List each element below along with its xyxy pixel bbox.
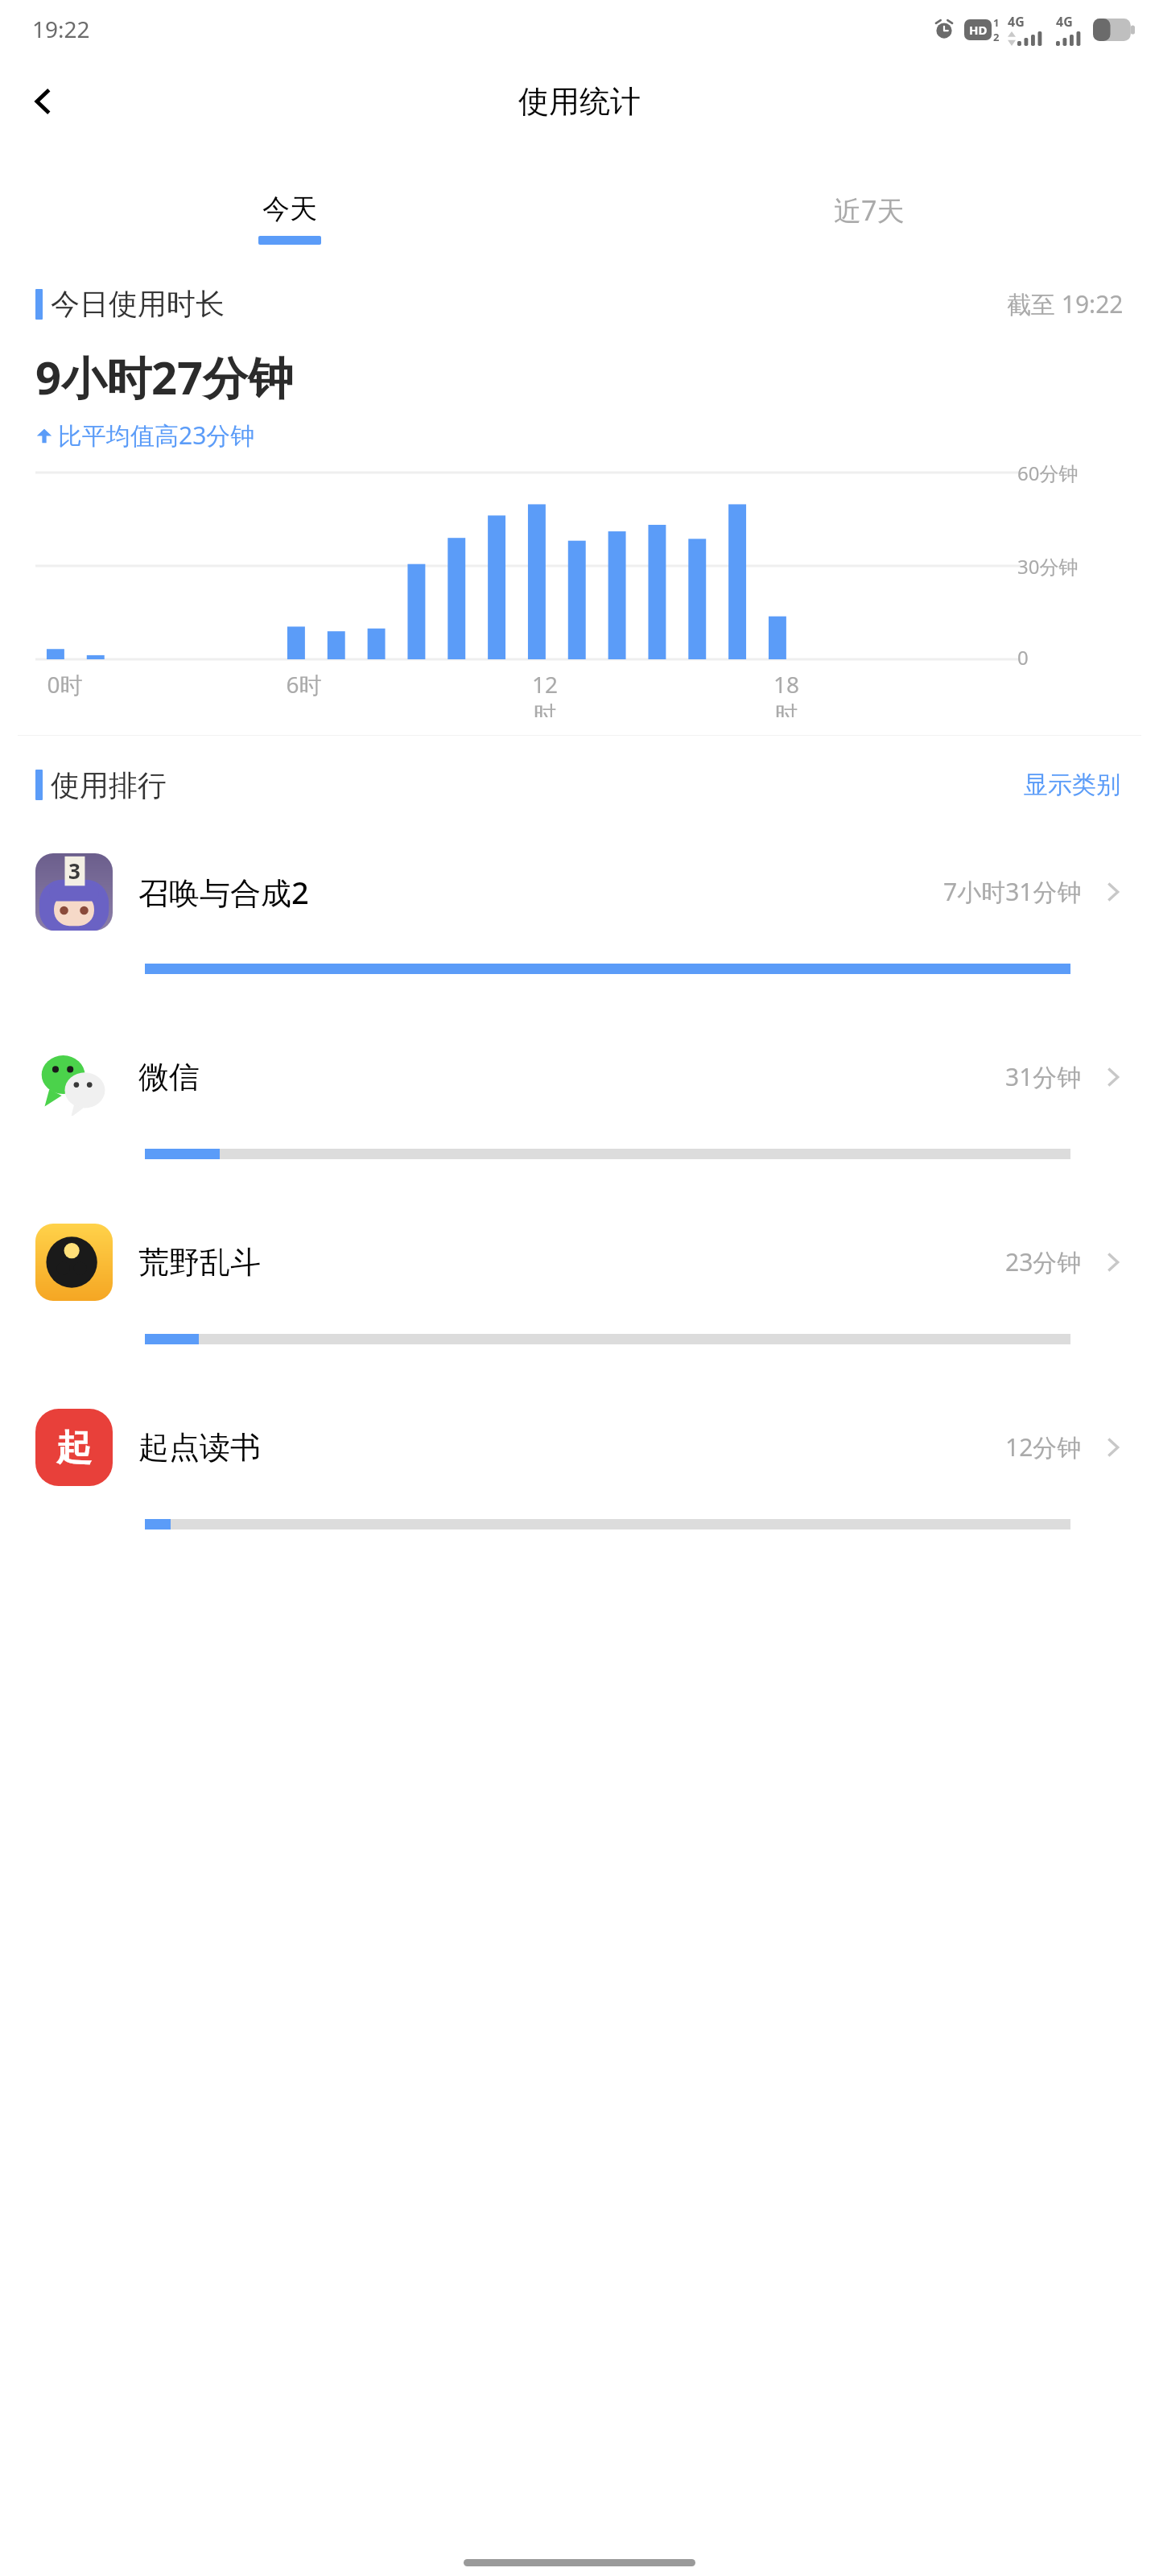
staticText: 截至 19:22 — [1007, 287, 1124, 320]
staticText: 今天 — [262, 192, 317, 226]
staticText: 9小时27分钟 — [35, 346, 294, 407]
staticText: 30分钟 — [1017, 553, 1079, 580]
staticText: 31分钟 — [1005, 1060, 1082, 1093]
staticText: 2 — [993, 30, 1000, 44]
staticText: 19:22 — [32, 14, 90, 44]
staticText: 近7天 — [834, 192, 905, 229]
staticText: 7小时31分钟 — [943, 875, 1082, 908]
staticText: 18时 — [766, 669, 806, 717]
button[interactable]: Back — [18, 76, 69, 127]
staticText: 使用排行 — [51, 767, 167, 803]
staticText: 0时 — [47, 669, 83, 700]
staticText: 显示类别 — [1024, 770, 1120, 800]
staticText: 0 — [1017, 644, 1029, 671]
staticText: 23分钟 — [1005, 1245, 1082, 1278]
button[interactable]: 荒野乱斗 — [0, 1190, 1159, 1375]
staticText: 6时 — [286, 669, 322, 700]
staticText: 召唤与合成2 — [138, 871, 309, 913]
staticText: 微信 — [138, 1058, 200, 1096]
button[interactable]: 显示类别 — [1021, 766, 1124, 803]
button[interactable]: 近7天 — [802, 187, 937, 252]
staticText: 1 — [993, 15, 1000, 30]
staticText: 12分钟 — [1005, 1430, 1082, 1463]
staticText: 60分钟 — [1017, 460, 1079, 486]
button[interactable]: 今天 — [226, 187, 353, 250]
staticText: 今日使用时长 — [51, 286, 225, 322]
staticText: 4G — [1056, 13, 1073, 31]
button[interactable]: 起 — [0, 1375, 1159, 1560]
staticText: 起点读书 — [138, 1428, 261, 1467]
staticText: 使用统计 — [518, 82, 641, 121]
staticText: 12时 — [525, 669, 565, 717]
staticText: 3 — [68, 857, 80, 885]
button[interactable]: 3 — [0, 819, 1159, 1005]
staticText: 4G — [1008, 13, 1025, 31]
button[interactable]: 微信 — [0, 1005, 1159, 1190]
staticText: HD — [969, 22, 988, 38]
staticText: 起 — [56, 1426, 92, 1470]
staticText: 荒野乱斗 — [138, 1243, 261, 1282]
staticText: 比平均值高23分钟 — [58, 419, 255, 452]
